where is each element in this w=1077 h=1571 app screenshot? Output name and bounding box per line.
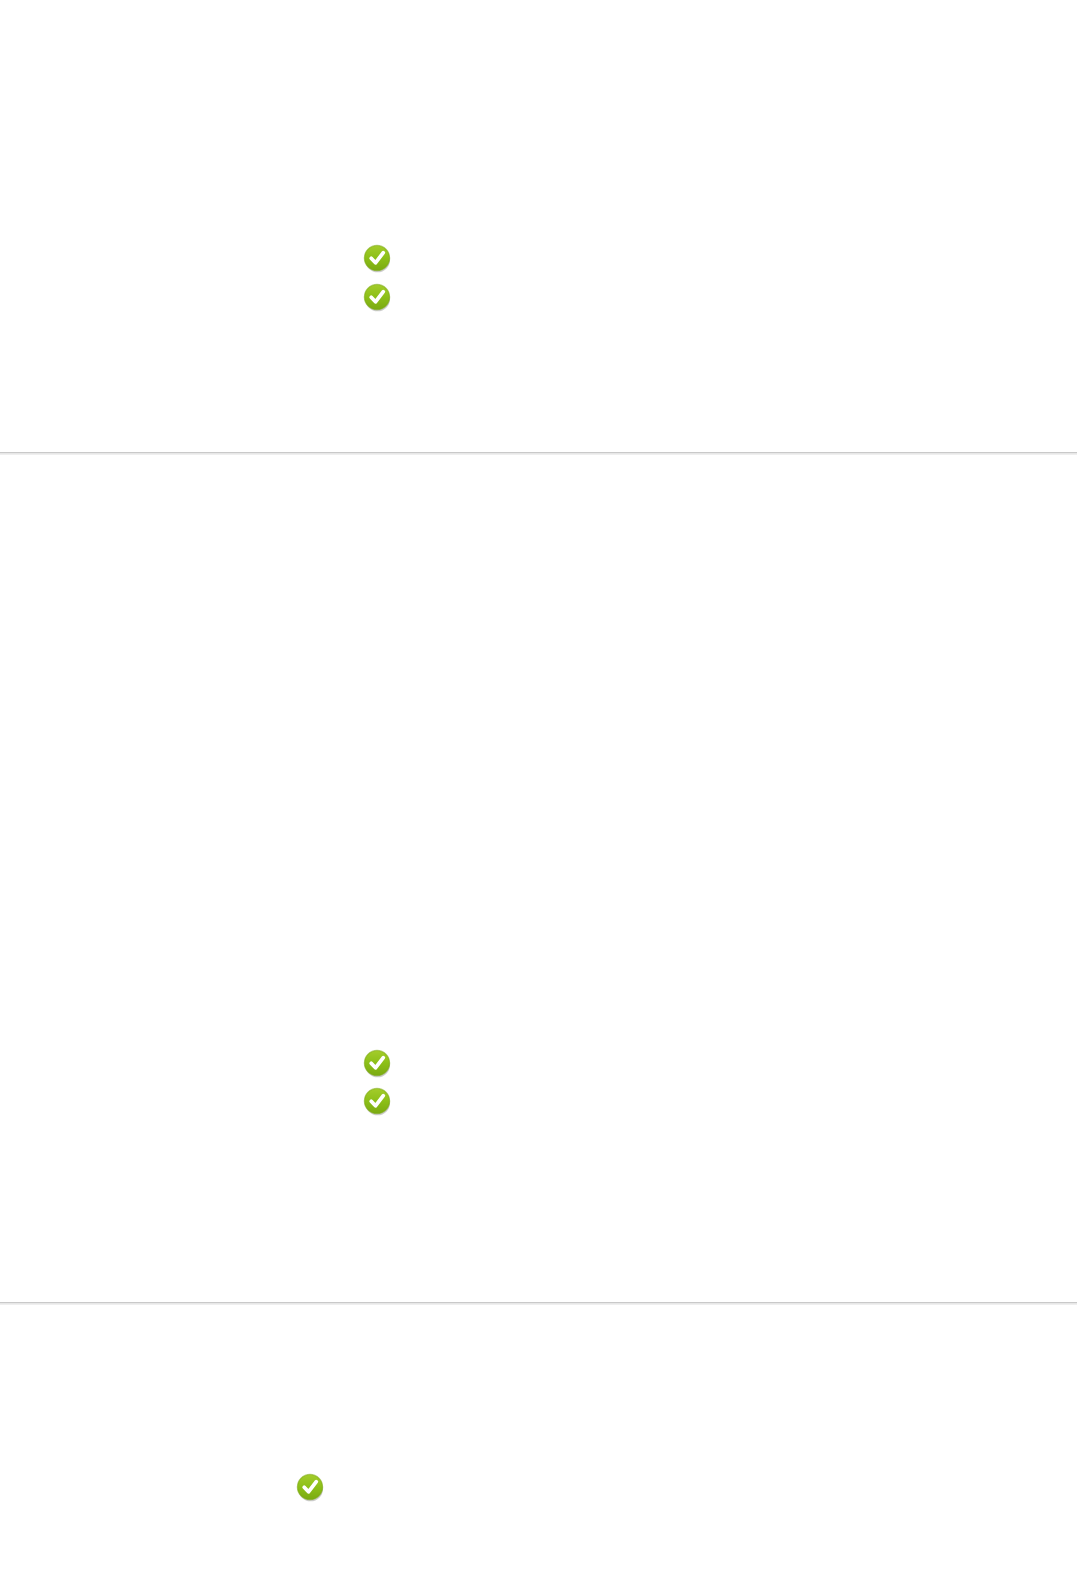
button[interactable]: Completed	[363, 283, 391, 311]
button[interactable]: Completed	[363, 1049, 391, 1077]
button[interactable]: Completed	[296, 1473, 324, 1501]
button[interactable]: Completed	[363, 1087, 391, 1115]
button[interactable]: Completed	[363, 244, 391, 272]
